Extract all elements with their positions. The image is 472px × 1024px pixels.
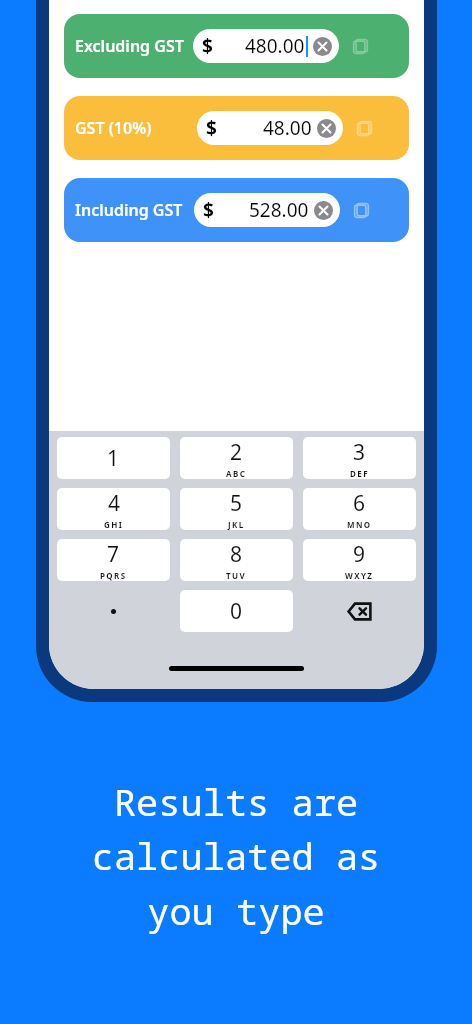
button[interactable]: $ <box>193 29 339 63</box>
staticText: 4 <box>108 489 121 518</box>
button[interactable]: 3 <box>303 437 416 479</box>
staticText: 9 <box>353 540 366 569</box>
button[interactable]: 5 <box>180 488 293 530</box>
staticText: 7 <box>107 540 120 569</box>
staticText: TUV <box>226 570 247 581</box>
staticText: 2 <box>230 438 243 467</box>
button[interactable]: Copy Excluding GST <box>348 34 372 58</box>
staticText: PQRS <box>100 570 127 581</box>
staticText: 528.00 <box>249 197 309 223</box>
button[interactable]: 4 <box>57 488 170 530</box>
button[interactable]: Decimal point <box>52 590 175 632</box>
staticText: ABC <box>226 468 247 479</box>
button[interactable]: Copy Including GST <box>349 198 373 222</box>
staticText: JKL <box>228 519 245 530</box>
staticText: 1 <box>107 444 120 473</box>
staticText: $ <box>206 115 217 141</box>
staticText: 6 <box>353 489 366 518</box>
button[interactable]: 9 <box>303 539 416 581</box>
staticText: 0 <box>230 597 243 626</box>
staticText: 480.00 <box>245 33 305 59</box>
button[interactable]: 1 <box>57 437 170 479</box>
staticText: GST (10%) <box>75 117 152 139</box>
staticText: $ <box>202 33 213 59</box>
other: Clear <box>317 119 336 138</box>
button[interactable]: Backspace <box>298 590 421 632</box>
staticText: 8 <box>230 540 243 569</box>
other: Clear <box>313 37 332 56</box>
staticText: MNO <box>347 519 372 530</box>
button[interactable]: 0 <box>180 590 293 632</box>
other: Clear <box>314 201 333 220</box>
staticText: WXYZ <box>345 570 374 581</box>
staticText: 48.00 <box>263 115 312 141</box>
button[interactable]: 2 <box>180 437 293 479</box>
staticText: Results are calculated as you type <box>0 776 472 936</box>
button[interactable]: Excluding GST <box>64 14 409 78</box>
button[interactable]: 6 <box>303 488 416 530</box>
staticText: 3 <box>353 438 366 467</box>
staticText: Excluding GST <box>75 35 184 57</box>
button[interactable]: $ <box>194 193 340 227</box>
button[interactable]: GST (10%) <box>64 96 409 160</box>
staticText: 5 <box>230 489 243 518</box>
button[interactable]: 7 <box>57 539 170 581</box>
staticText: $ <box>203 197 214 223</box>
staticText: Including GST <box>75 199 183 221</box>
staticText: DEF <box>350 468 369 479</box>
button[interactable]: Including GST <box>64 178 409 242</box>
button[interactable]: 8 <box>180 539 293 581</box>
button[interactable]: $ <box>197 111 343 145</box>
button[interactable]: Copy GST (10%) <box>352 116 376 140</box>
staticText: GHI <box>104 519 124 530</box>
